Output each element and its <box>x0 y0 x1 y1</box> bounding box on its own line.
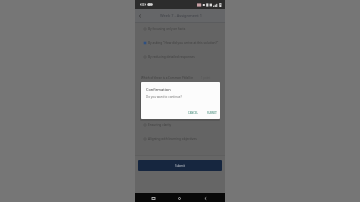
staticText: By reducing detailed responses <box>148 55 195 59</box>
button[interactable]: Aligning with learning objectives <box>143 135 221 143</box>
staticText: Do you want to continue? <box>146 95 182 99</box>
staticText: Ensuring clarity <box>148 123 172 127</box>
staticText: Submit <box>175 164 186 168</box>
button[interactable]: Back <box>201 194 210 202</box>
button[interactable]: Home <box>175 194 184 202</box>
button[interactable]: By focusing only on facts <box>143 25 221 33</box>
button[interactable]: Back <box>136 12 143 19</box>
staticText: SUBMIT <box>207 111 217 115</box>
button[interactable]: By asking "How did you arrive at this so… <box>143 39 221 47</box>
button[interactable]: Ensuring clarity <box>143 121 221 129</box>
staticText: By asking "How did you arrive at this so… <box>148 41 219 45</box>
staticText: Which of these is a Common Pitfall in <box>141 76 194 80</box>
staticText: Week 7 - Assignment 1 <box>160 13 203 18</box>
button[interactable]: Submit <box>138 160 222 171</box>
button[interactable]: Recent apps <box>149 194 158 202</box>
staticText: CANCEL <box>188 111 198 115</box>
button[interactable]: CANCEL <box>186 110 200 116</box>
button[interactable]: SUBMIT <box>205 110 219 116</box>
staticText: By focusing only on facts <box>148 27 186 31</box>
button[interactable]: By reducing detailed responses <box>143 53 221 61</box>
staticText: Confirmation <box>146 87 171 92</box>
staticText: Aligning with learning objectives <box>148 137 197 141</box>
